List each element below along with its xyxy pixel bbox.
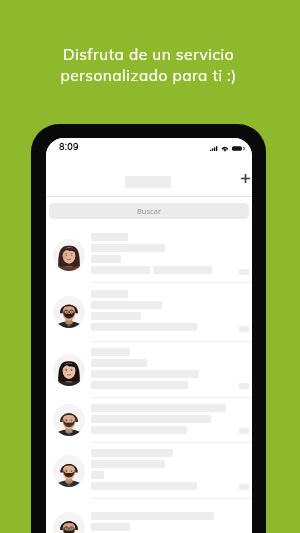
- button[interactable]: Buscar: [49, 203, 249, 219]
- button[interactable]: [46, 342, 252, 398]
- staticText: Buscar: [137, 206, 162, 216]
- staticText: 8:09: [59, 139, 79, 153]
- button[interactable]: [46, 443, 252, 499]
- button[interactable]: [46, 228, 252, 283]
- button[interactable]: [46, 398, 252, 443]
- button[interactable]: Nuevo chat: [235, 168, 252, 188]
- button[interactable]: [46, 283, 252, 342]
- button[interactable]: [46, 499, 252, 533]
- staticText: Disfruta de un servicio personalizado pa…: [60, 44, 237, 85]
